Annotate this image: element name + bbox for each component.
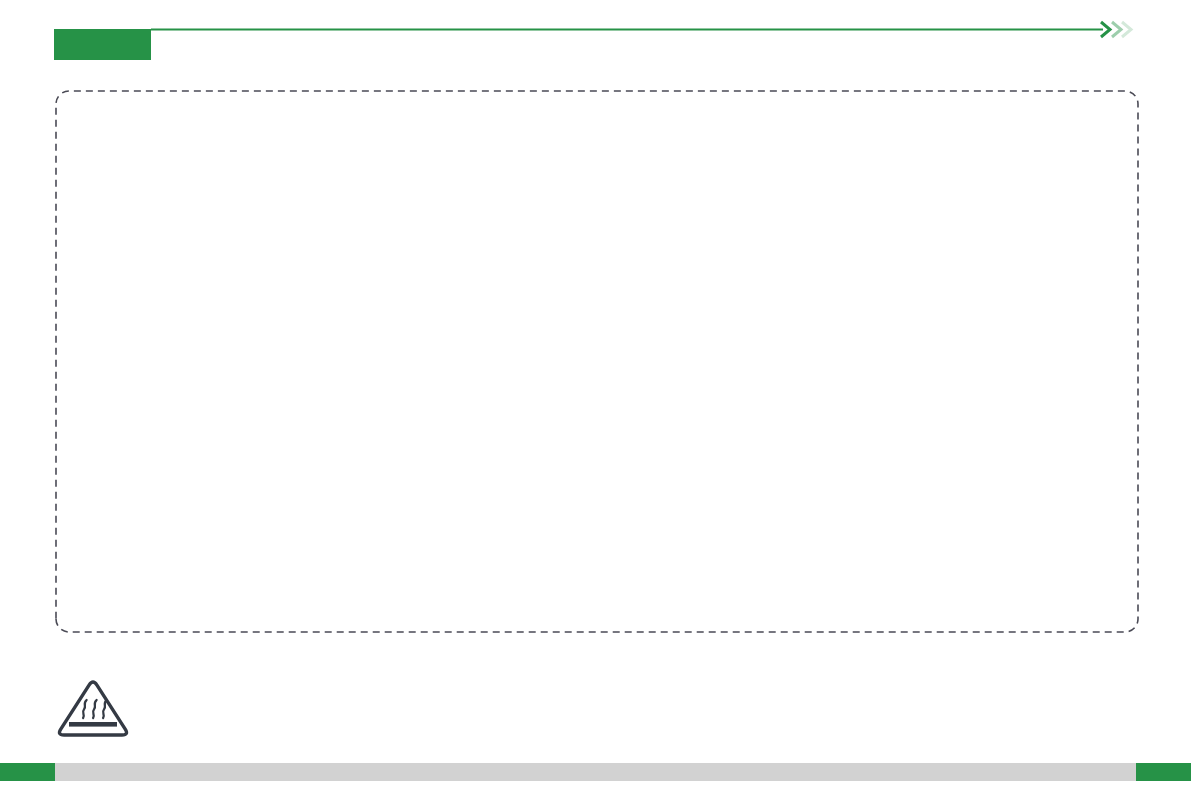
button[interactable]: Content area	[0, 0, 1191, 794]
button[interactable]: Footer progress bar	[0, 0, 1191, 794]
button[interactable]: Hot surface warning	[0, 0, 1191, 794]
button[interactable]: Section header	[0, 0, 1191, 794]
